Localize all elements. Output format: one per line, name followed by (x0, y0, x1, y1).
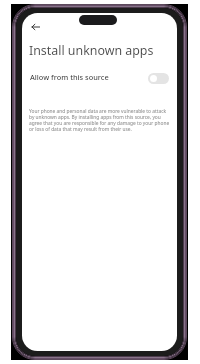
staticText: Your phone and personal data are more vu… (29, 108, 171, 132)
staticText: Allow from this source (30, 72, 109, 82)
staticText: Install unknown apps (29, 42, 154, 59)
button[interactable]: Navigate up (25, 17, 45, 37)
button[interactable]: Allow from this source toggle (148, 73, 169, 84)
